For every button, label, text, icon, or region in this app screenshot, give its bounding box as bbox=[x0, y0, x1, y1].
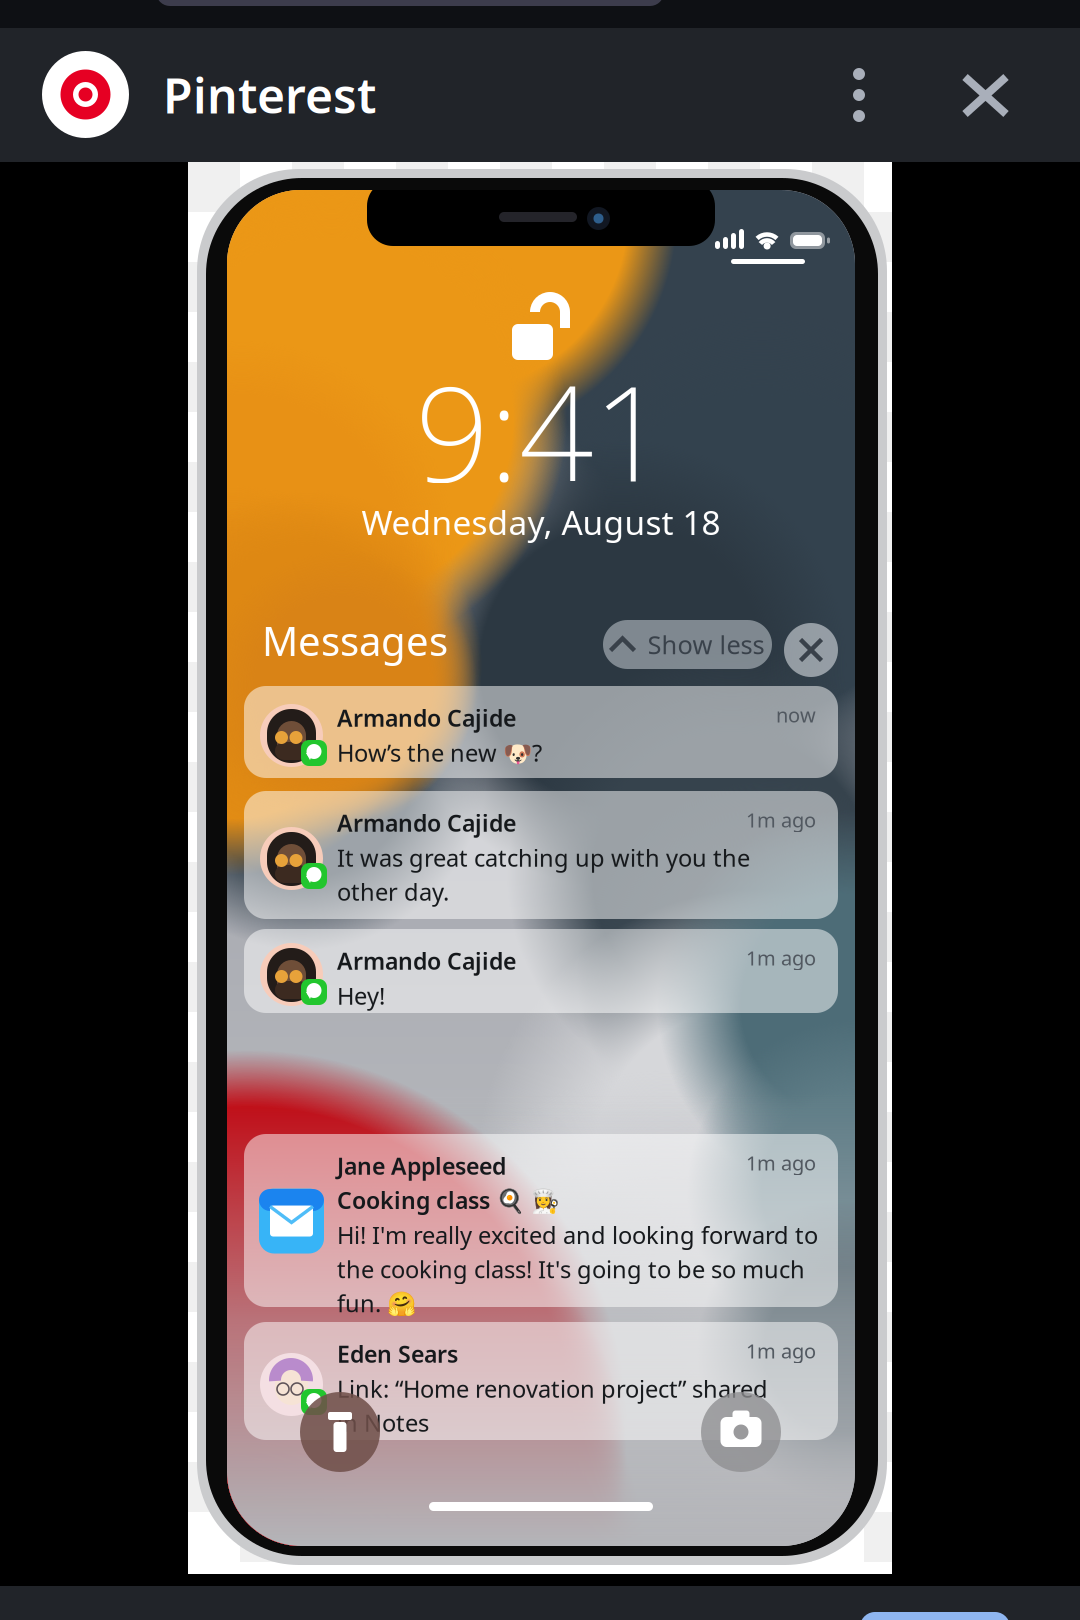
staticText: How’s the new 🐶? bbox=[337, 736, 542, 768]
staticText: Messages bbox=[262, 614, 448, 667]
staticText: 1m ago bbox=[746, 944, 816, 971]
staticText: other day. bbox=[337, 876, 449, 908]
staticText: Hi! I'm really excited and looking forwa… bbox=[337, 1219, 818, 1251]
button[interactable]: Camera bbox=[701, 1392, 781, 1472]
staticText: 1m ago bbox=[746, 806, 816, 833]
button[interactable]: Show less bbox=[603, 620, 772, 669]
button[interactable]: Armando Cajide bbox=[244, 686, 838, 778]
button[interactable]: More options bbox=[823, 59, 895, 131]
staticText: 1m ago bbox=[746, 1337, 816, 1364]
button[interactable]: Close bbox=[943, 52, 1028, 139]
staticText: now bbox=[776, 701, 816, 728]
staticText: Pinterest bbox=[163, 63, 376, 127]
staticText: Armando Cajide bbox=[337, 807, 516, 838]
staticText: Jane Appleseed bbox=[337, 1150, 506, 1181]
staticText: Eden Sears bbox=[337, 1338, 458, 1369]
staticText: Armando Cajide bbox=[337, 702, 516, 733]
button[interactable]: Eden Sears bbox=[244, 1322, 838, 1440]
staticText: It was great catching up with you the bbox=[337, 841, 750, 873]
button[interactable]: Jane Appleseed bbox=[244, 1134, 838, 1307]
staticText: Link: “Home renovation project” shared bbox=[337, 1372, 768, 1404]
staticText: 1m ago bbox=[746, 1149, 816, 1176]
staticText: fun. 🤗 bbox=[337, 1287, 416, 1319]
staticText: Wednesday, August 18 bbox=[361, 500, 720, 544]
staticText: Show less bbox=[647, 628, 764, 661]
button[interactable]: Pinterest bbox=[42, 51, 129, 138]
staticText: in Notes bbox=[337, 1407, 429, 1439]
button[interactable]: Flashlight bbox=[300, 1392, 380, 1472]
button[interactable]: Armando Cajide bbox=[244, 791, 838, 919]
button[interactable]: Armando Cajide bbox=[244, 929, 838, 1013]
staticText: the cooking class! It's going to be so m… bbox=[337, 1253, 805, 1285]
button[interactable]: Pinterest bbox=[163, 70, 433, 120]
staticText: Cooking class 🍳 👩‍🍳 bbox=[337, 1184, 560, 1216]
button[interactable]: Clear notifications bbox=[784, 623, 838, 677]
staticText: Armando Cajide bbox=[337, 945, 516, 976]
staticText: Hey! bbox=[337, 979, 385, 1011]
staticText: 9:41 bbox=[415, 344, 667, 517]
